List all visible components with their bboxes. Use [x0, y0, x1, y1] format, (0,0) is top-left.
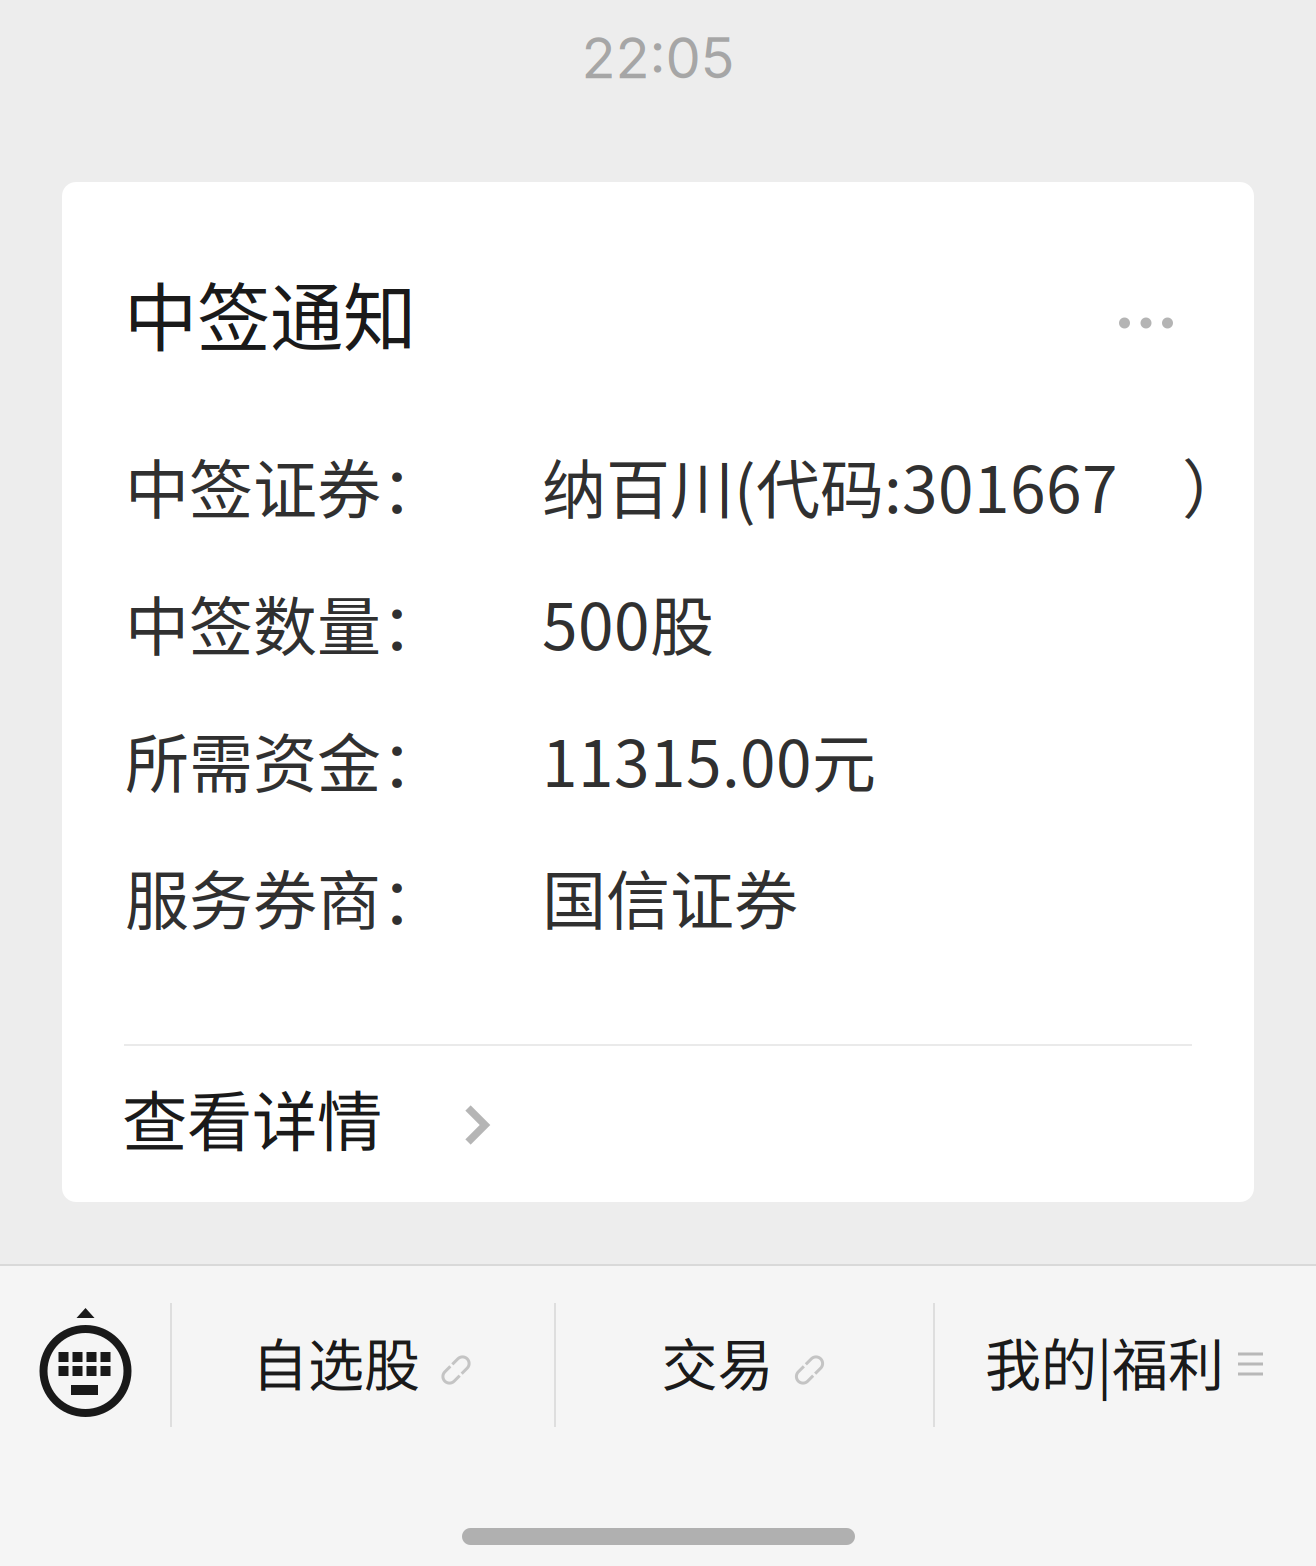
staticText: 中签证券：	[125, 439, 445, 531]
button[interactable]: Keyboard	[0, 1280, 170, 1442]
staticText: 服务券商：	[125, 850, 445, 942]
staticText: 我的|福利	[985, 1320, 1224, 1402]
button[interactable]: 交易	[556, 1280, 933, 1442]
button[interactable]: 自选股	[172, 1280, 554, 1442]
staticText: 中签数量：	[125, 576, 445, 668]
staticText: 自选股	[252, 1320, 420, 1402]
staticText: 22:05	[581, 24, 734, 92]
button[interactable]: More	[1084, 276, 1208, 370]
staticText: 11315.00元	[542, 713, 876, 805]
staticText: 交易	[661, 1320, 773, 1402]
staticText: 500股	[542, 576, 714, 668]
staticText: 纳百川(代码:301667 ）	[542, 439, 1246, 531]
staticText: 国信证券	[542, 850, 798, 942]
button[interactable]: 查看详情	[122, 1057, 1245, 1177]
staticText: 查看详情	[122, 1070, 382, 1164]
staticText: 所需资金：	[125, 713, 445, 805]
button[interactable]: 我的|福利	[935, 1280, 1316, 1442]
staticText: 中签通知	[124, 260, 416, 366]
